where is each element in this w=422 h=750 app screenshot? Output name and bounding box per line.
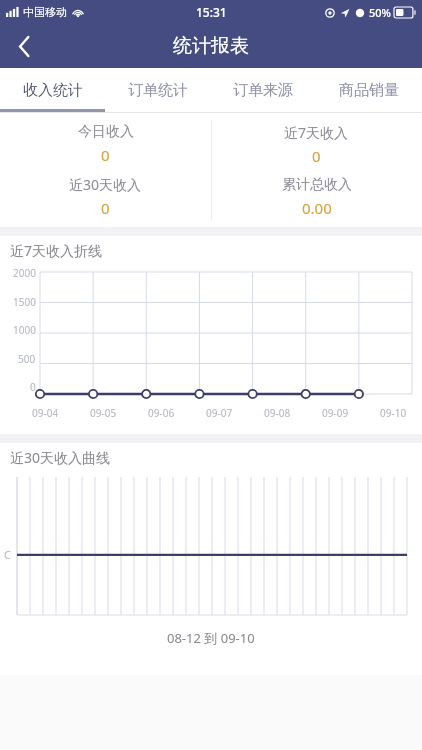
staticText: 08-12 到 09-10 — [167, 629, 255, 647]
staticText: 09-07 — [206, 406, 233, 420]
staticText: 15:31 — [196, 4, 227, 20]
staticText: 50% — [369, 5, 391, 20]
staticText: 1500 — [13, 295, 36, 309]
staticText: 0.00 — [302, 198, 332, 218]
staticText: 订单统计 — [128, 81, 188, 100]
staticText: 近7天收入 — [284, 123, 349, 142]
staticText: 订单来源 — [233, 81, 293, 100]
staticText: 统计报表 — [173, 34, 249, 58]
staticText: 09-08 — [264, 406, 291, 420]
staticText: 09-06 — [148, 406, 175, 420]
staticText: C — [4, 547, 11, 562]
button[interactable]: 订单来源 — [210, 68, 316, 112]
staticText: 2000 — [13, 266, 36, 280]
staticText: 0 — [312, 146, 321, 166]
staticText: 09-04 — [32, 406, 59, 420]
staticText: 中国移动 — [23, 5, 67, 19]
button[interactable]: Back — [0, 24, 48, 68]
staticText: 累计总收入 — [282, 176, 352, 194]
staticText: 09-09 — [322, 406, 349, 420]
staticText: 收入统计 — [23, 81, 83, 100]
staticText: 近30天收入曲线 — [10, 448, 111, 467]
staticText: 0 — [30, 380, 36, 394]
button[interactable]: 收入统计 — [0, 68, 105, 112]
staticText: 09-05 — [90, 406, 117, 420]
button[interactable]: 订单统计 — [105, 68, 210, 112]
staticText: 近7天收入折线 — [10, 241, 103, 260]
staticText: 1000 — [13, 323, 36, 337]
staticText: 0 — [101, 198, 110, 218]
staticText: 0 — [101, 145, 110, 165]
staticText: 500 — [18, 352, 36, 366]
staticText: 近30天收入 — [69, 175, 142, 194]
staticText: 商品销量 — [339, 81, 399, 100]
button[interactable]: 商品销量 — [316, 68, 422, 112]
staticText: 今日收入 — [78, 123, 134, 141]
staticText: 09-10 — [380, 406, 407, 420]
